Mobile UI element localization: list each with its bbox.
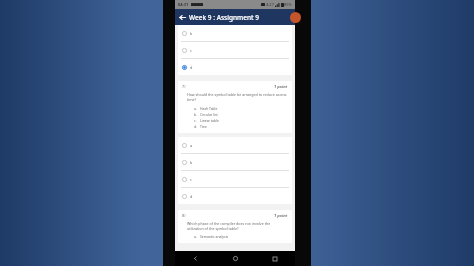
staticText: a. — [194, 234, 197, 239]
button[interactable]: c — [178, 42, 292, 58]
staticText: b — [190, 160, 193, 165]
button[interactable]: a — [178, 137, 292, 153]
staticText: c — [190, 48, 192, 53]
button[interactable]: b — [178, 25, 292, 41]
staticText: 1 point — [274, 213, 288, 218]
button[interactable]: Home — [215, 251, 255, 266]
staticText: Linear table — [200, 118, 219, 123]
staticText: 85% — [284, 2, 292, 7]
staticText: Circular list — [200, 112, 218, 117]
staticText: How should the symbol table be arranged … — [187, 92, 287, 102]
staticText: 7) — [182, 84, 186, 89]
button[interactable]: Back — [175, 9, 189, 25]
staticText: Semantic analysis — [200, 234, 229, 239]
button[interactable]: d — [178, 59, 292, 75]
staticText: d — [190, 65, 193, 70]
staticText: a. — [194, 106, 197, 111]
staticText: Tree — [200, 124, 207, 129]
staticText: d — [190, 194, 193, 199]
button[interactable]: d — [178, 188, 292, 204]
staticText: 1 point — [274, 84, 288, 89]
button[interactable]: Back — [175, 251, 215, 266]
staticText: 04:31 — [178, 2, 189, 7]
staticText: b. — [194, 112, 197, 117]
staticText: a — [190, 143, 193, 148]
button[interactable]: Recent apps — [255, 251, 295, 266]
staticText: c. — [194, 118, 197, 123]
staticText: c — [190, 177, 192, 182]
staticText: Hash Table — [200, 106, 218, 111]
staticText: 4:27 — [266, 2, 274, 7]
staticText: d. — [194, 124, 197, 129]
staticText: b — [190, 31, 193, 36]
button[interactable]: b — [178, 154, 292, 170]
staticText: Week 9 : Assignment 9 — [189, 13, 259, 22]
staticText: Which phase of the compiler does not inv… — [187, 221, 287, 231]
button[interactable]: Profile — [290, 12, 301, 23]
staticText: 8) — [182, 213, 186, 218]
button[interactable]: c — [178, 171, 292, 187]
